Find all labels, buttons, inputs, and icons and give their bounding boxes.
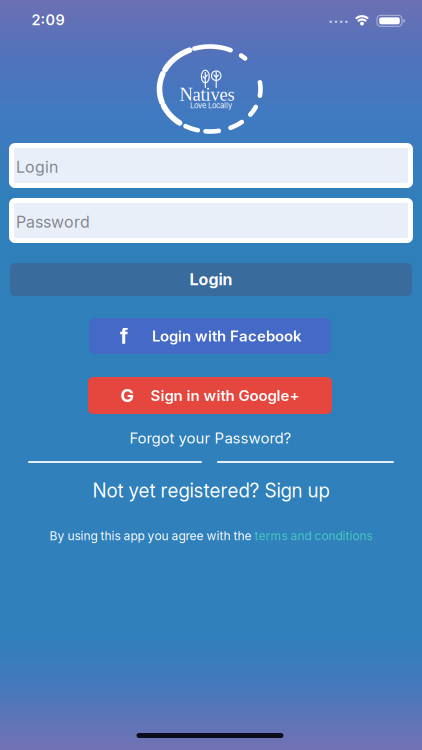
staticText: Login	[16, 157, 58, 177]
staticText: 2:09	[31, 11, 64, 29]
staticText: f	[120, 323, 128, 349]
button[interactable]: Not yet registered? Sign up	[92, 479, 329, 502]
staticText: Login	[189, 270, 232, 289]
button[interactable]: Login	[10, 263, 412, 296]
staticText: Natives	[179, 84, 234, 105]
staticText: Login with Facebook	[152, 327, 302, 345]
staticText: By using this app you agree with the	[49, 529, 254, 543]
button[interactable]: Login	[9, 143, 413, 188]
button[interactable]: G	[88, 377, 332, 414]
staticText: G	[120, 385, 133, 406]
button[interactable]: terms and conditions	[254, 529, 372, 543]
staticText: Sign in with Google+	[150, 386, 299, 404]
staticText: Not yet registered? Sign up	[92, 479, 329, 502]
button[interactable]: Password	[9, 198, 413, 243]
button[interactable]: Forgot your Password?	[129, 429, 291, 447]
staticText: terms and conditions	[254, 529, 372, 543]
button[interactable]: f	[89, 318, 331, 354]
staticText: Password	[16, 212, 90, 232]
staticText: Forgot your Password?	[129, 429, 291, 447]
staticText: Love Locally	[190, 101, 232, 110]
